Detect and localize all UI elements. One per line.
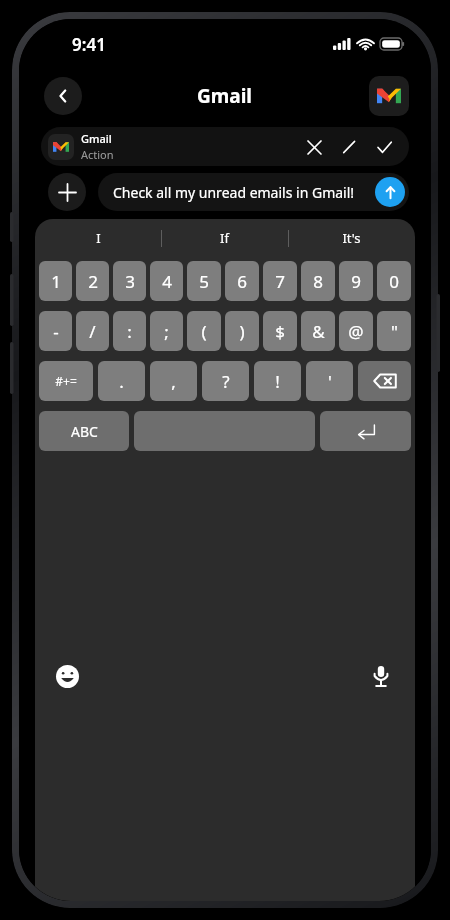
button[interactable]: , — [150, 361, 197, 401]
button[interactable]: 1 — [39, 261, 72, 301]
button[interactable]: 6 — [225, 261, 259, 301]
button[interactable]: 7 — [263, 261, 297, 301]
staticText: 7 — [275, 270, 285, 293]
staticText: Gmail — [197, 83, 253, 109]
staticText: @ — [348, 320, 364, 343]
staticText: 4 — [162, 270, 172, 293]
staticText: 6 — [237, 270, 247, 293]
button[interactable]: Send — [375, 177, 405, 207]
button[interactable]: Edit — [338, 136, 360, 158]
button[interactable]: 3 — [113, 261, 146, 301]
button[interactable]: . — [98, 361, 145, 401]
button[interactable]: If — [161, 219, 288, 257]
button[interactable]: ' — [306, 361, 353, 401]
button[interactable]: Backspace — [358, 361, 411, 401]
staticText: 3 — [125, 270, 135, 293]
button[interactable]: & — [301, 311, 335, 351]
button[interactable]: Voice input — [365, 660, 397, 692]
staticText: 5 — [199, 270, 209, 293]
staticText: 1 — [51, 270, 61, 293]
button[interactable]: ( — [187, 311, 221, 351]
button[interactable]: ABC — [39, 411, 129, 451]
staticText: 8 — [313, 270, 323, 293]
button[interactable]: ? — [202, 361, 249, 401]
staticText: ' — [328, 370, 332, 393]
button[interactable]: $ — [263, 311, 297, 351]
staticText: $ — [275, 320, 285, 343]
staticText: . — [119, 370, 124, 393]
button[interactable]: Back — [44, 77, 82, 115]
staticText: 9 — [351, 270, 361, 293]
staticText: - — [53, 320, 59, 343]
button[interactable]: 5 — [187, 261, 221, 301]
staticText: Gmail — [81, 131, 112, 146]
button[interactable]: Confirm — [373, 136, 395, 158]
button[interactable]: 4 — [150, 261, 183, 301]
button[interactable]: 0 — [377, 261, 411, 301]
staticText: If — [220, 229, 229, 247]
staticText: Action — [81, 147, 114, 162]
button[interactable]: Dismiss — [303, 136, 325, 158]
button[interactable]: Gmail app — [369, 76, 409, 116]
button[interactable]: Add — [48, 173, 86, 211]
button[interactable]: ! — [254, 361, 301, 401]
staticText: 2 — [88, 270, 98, 293]
staticText: ( — [201, 320, 207, 343]
button[interactable]: Space — [134, 411, 315, 451]
button[interactable]: @ — [339, 311, 373, 351]
button[interactable]: " — [377, 311, 411, 351]
staticText: " — [391, 320, 398, 343]
staticText: ) — [239, 320, 245, 343]
button[interactable]: 9 — [339, 261, 373, 301]
staticText: ABC — [71, 422, 98, 441]
staticText: 9:41 — [72, 33, 106, 56]
button[interactable]: Gmail — [41, 127, 409, 166]
staticText: I — [96, 229, 101, 247]
staticText: 0 — [389, 270, 399, 293]
staticText: & — [312, 320, 325, 343]
button[interactable]: Emoji — [51, 660, 83, 692]
button[interactable]: Return — [320, 411, 411, 451]
staticText: ; — [164, 320, 169, 343]
staticText: It's — [342, 229, 361, 247]
button[interactable]: I — [35, 219, 161, 257]
staticText: , — [171, 370, 176, 393]
button[interactable]: 2 — [76, 261, 109, 301]
staticText: : — [127, 320, 132, 343]
button[interactable]: #+= — [39, 361, 93, 401]
staticText: #+= — [55, 373, 77, 389]
button[interactable]: / — [76, 311, 109, 351]
staticText: ! — [275, 370, 280, 393]
staticText: ? — [222, 370, 230, 393]
button[interactable]: It's — [288, 219, 415, 257]
button[interactable]: ) — [225, 311, 259, 351]
staticText: / — [89, 320, 96, 343]
button[interactable]: ; — [150, 311, 183, 351]
button[interactable]: - — [39, 311, 72, 351]
button[interactable]: 8 — [301, 261, 335, 301]
button[interactable]: Check all my unread emails in Gmail! — [98, 173, 409, 211]
button[interactable]: : — [113, 311, 146, 351]
staticText: Check all my unread emails in Gmail! — [113, 183, 375, 202]
